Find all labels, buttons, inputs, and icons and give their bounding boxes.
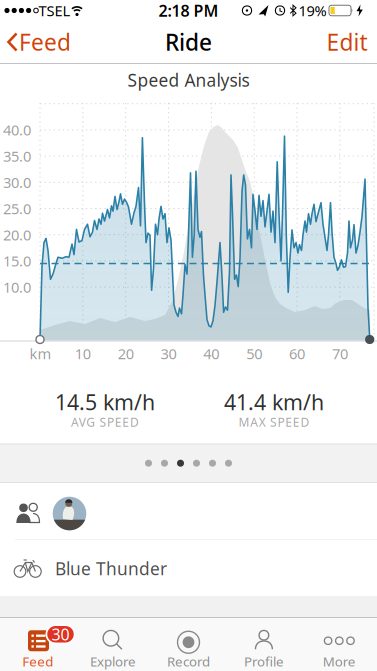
staticText: Profile (244, 652, 284, 670)
staticText: 30 (51, 624, 69, 645)
staticText: 20.0 (3, 225, 31, 244)
staticText: AVG SPEED (71, 414, 139, 430)
button[interactable]: Back to Feed (0, 20, 70, 64)
staticText: 60 (289, 344, 305, 363)
button[interactable]: Profile (226, 618, 302, 671)
staticText: Edit (326, 27, 367, 57)
staticText: 30 (160, 344, 176, 363)
staticText: Speed Analysis (127, 68, 249, 91)
button[interactable]: Feed (0, 618, 75, 671)
staticText: 50 (246, 344, 262, 363)
staticText: 41.4 km/h (224, 388, 324, 416)
staticText: 40.0 (3, 120, 31, 140)
staticText: 10.0 (3, 277, 31, 297)
staticText: 35.0 (3, 146, 31, 166)
staticText: Blue Thunder (55, 557, 167, 580)
staticText: Feed (22, 652, 53, 670)
staticText: 19% (298, 1, 326, 20)
staticText: Ride (165, 27, 212, 57)
staticText: More (323, 652, 356, 670)
staticText: Record (167, 652, 210, 670)
staticText: 20 (118, 344, 134, 363)
staticText: 14.5 km/h (55, 388, 155, 416)
button[interactable]: Explore (75, 618, 151, 671)
staticText: 15.0 (3, 251, 31, 271)
staticText: 70 (332, 344, 348, 363)
staticText: TSEL (38, 1, 70, 20)
staticText: MAX SPEED (239, 414, 309, 430)
button[interactable]: Athletes (0, 483, 377, 540)
button[interactable]: Gear: Blue Thunder (0, 540, 377, 597)
staticText: 25.0 (3, 199, 31, 218)
staticText: 40 (203, 344, 219, 363)
staticText: 2:18 PM (158, 0, 218, 21)
staticText: Explore (90, 652, 136, 670)
staticText: km (29, 344, 51, 363)
staticText: 30.0 (3, 173, 31, 192)
button[interactable]: Edit (319, 20, 375, 64)
staticText: 10 (75, 344, 91, 363)
staticText: Feed (19, 27, 71, 57)
button[interactable]: Record (151, 618, 226, 671)
button[interactable]: More (302, 618, 377, 671)
